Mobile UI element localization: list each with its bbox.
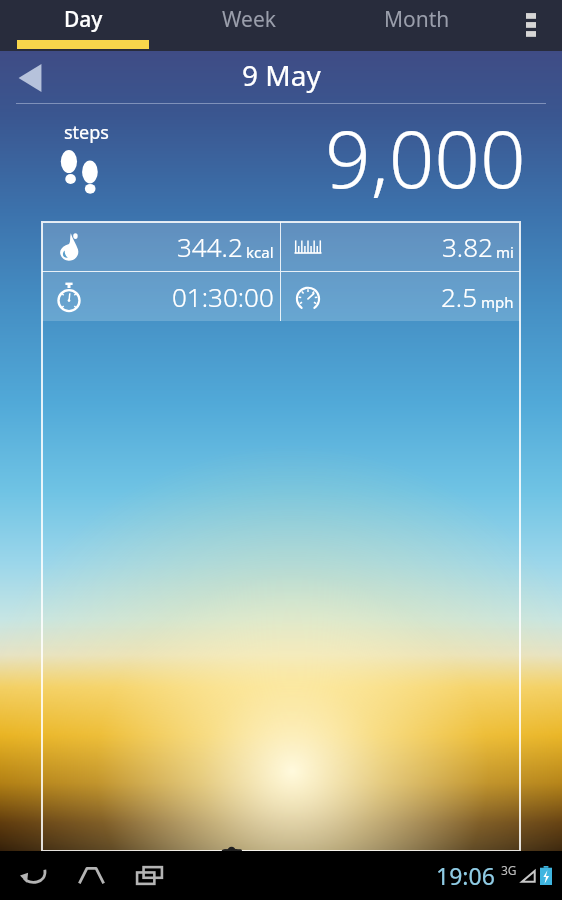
staticText: 9 May bbox=[242, 56, 321, 94]
staticText: 19:06 bbox=[436, 860, 495, 891]
button[interactable]: 3.82 bbox=[281, 222, 520, 271]
staticText: kcal bbox=[246, 242, 274, 262]
button[interactable]: Day bbox=[0, 0, 166, 51]
button[interactable]: More options bbox=[500, 0, 562, 51]
staticText: 2.5 bbox=[441, 279, 478, 314]
button[interactable]: 344.2 bbox=[42, 222, 280, 271]
staticText: mph bbox=[481, 292, 514, 312]
staticText: 3.82 bbox=[442, 229, 493, 264]
staticText: steps bbox=[64, 120, 109, 145]
staticText: Day bbox=[64, 5, 103, 34]
button[interactable]: Month bbox=[333, 0, 500, 51]
staticText: 9,000 bbox=[325, 102, 526, 210]
staticText: mi bbox=[496, 242, 514, 262]
staticText: Month bbox=[384, 5, 450, 34]
button[interactable]: 01:30:00 bbox=[42, 272, 280, 321]
staticText: 344.2 bbox=[177, 229, 243, 264]
staticText: Week bbox=[222, 5, 277, 34]
button[interactable]: Week bbox=[166, 0, 333, 51]
staticText: 01:30:00 bbox=[172, 279, 274, 314]
button[interactable]: Back bbox=[4, 851, 62, 900]
button[interactable]: Recent apps bbox=[120, 851, 178, 900]
button[interactable]: Previous day bbox=[6, 54, 54, 102]
staticText: 3G bbox=[501, 862, 517, 878]
button[interactable]: 2.5 bbox=[281, 272, 520, 321]
button[interactable]: Home bbox=[62, 851, 120, 900]
